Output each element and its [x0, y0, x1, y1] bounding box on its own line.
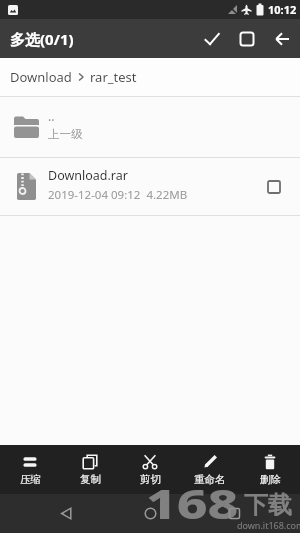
button[interactable] [214, 494, 254, 533]
staticText: 下载 [244, 490, 292, 520]
staticText: down.it168.com [237, 519, 300, 531]
staticText: 剪切 [140, 473, 161, 486]
button[interactable]: rar_test [90, 68, 137, 86]
button[interactable]: .. [0, 97, 300, 157]
button[interactable]: 压缩 [0, 445, 60, 494]
staticText: 重命名 [194, 473, 226, 486]
button[interactable] [46, 494, 86, 533]
button[interactable] [230, 19, 264, 58]
button[interactable]: Download.rar [0, 158, 300, 215]
staticText: 压缩 [20, 473, 41, 486]
staticText: 168 [146, 475, 240, 531]
staticText: 删除 [260, 473, 281, 486]
button[interactable]: 剪切 [120, 445, 180, 494]
button[interactable]: 重命名 [180, 445, 240, 494]
staticText: 10:12 [268, 2, 297, 17]
button[interactable]: 删除 [240, 445, 300, 494]
button[interactable]: Download [10, 68, 72, 86]
staticText: 上一级 [48, 127, 83, 141]
button[interactable] [264, 19, 300, 58]
button[interactable] [263, 176, 285, 198]
button[interactable] [194, 19, 230, 58]
button[interactable] [130, 494, 170, 533]
staticText: 2019-12-04 09:12 4.22MB [48, 187, 188, 203]
staticText: .. [48, 108, 55, 124]
button[interactable]: 复制 [60, 445, 120, 494]
staticText: Download.rar [48, 167, 128, 184]
staticText: 多选(0/1) [10, 29, 74, 49]
staticText: 复制 [80, 473, 101, 486]
